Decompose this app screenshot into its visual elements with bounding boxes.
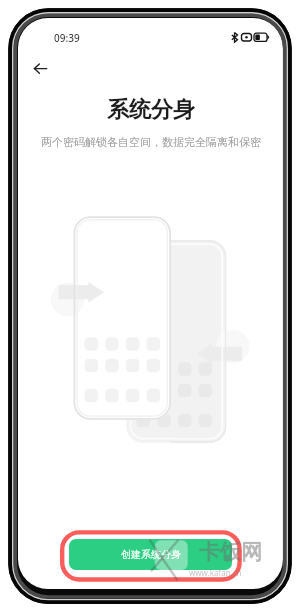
button[interactable]: 创建系统分身 [69,539,232,570]
staticText: 09:39 [54,31,80,45]
staticText: www.kafan.cn [189,567,242,578]
button[interactable]: Back [26,56,56,86]
staticText: 卡饭网 [199,539,262,565]
staticText: 系统分身 [107,96,195,124]
staticText: 创建系统分身 [121,548,181,561]
staticText: 两个密码解锁各自空间，数据完全隔离和保密 [41,135,261,149]
